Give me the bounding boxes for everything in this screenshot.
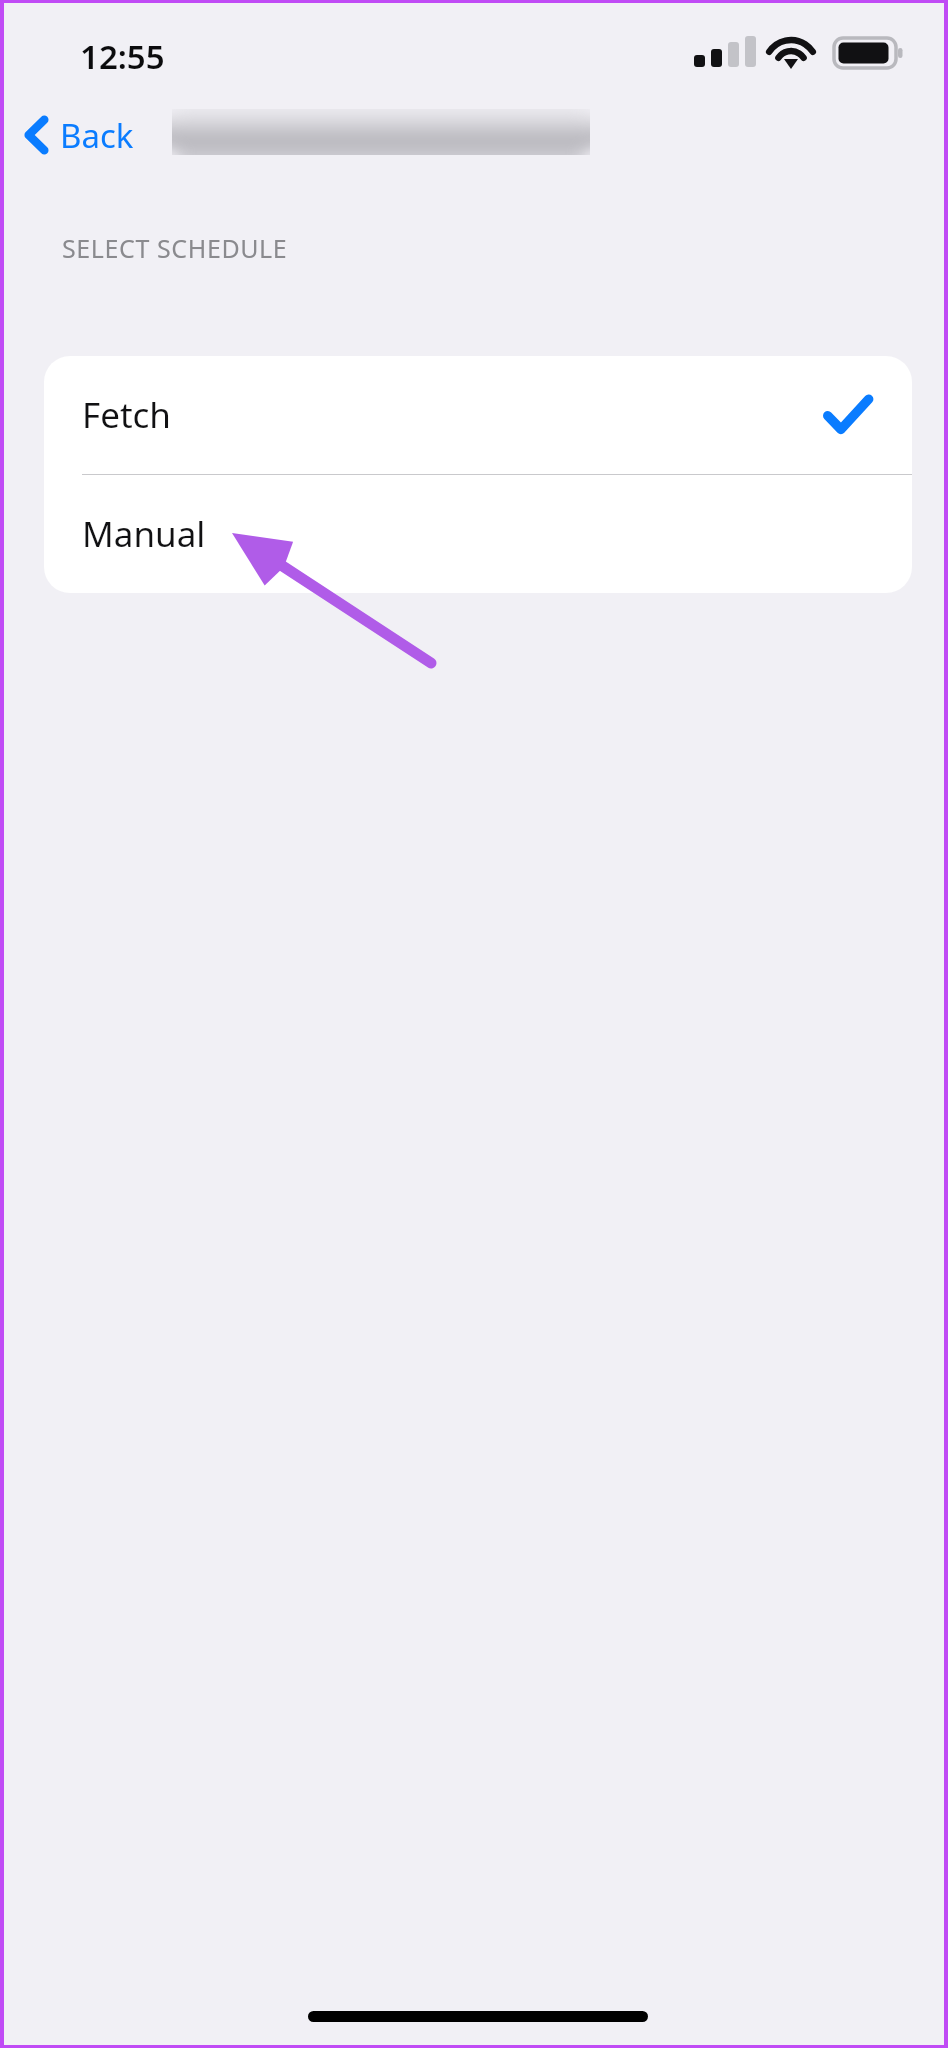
staticText: 12:55 xyxy=(80,34,165,79)
button[interactable]: Back xyxy=(18,103,140,167)
staticText: Back xyxy=(60,113,134,158)
button[interactable]: Fetch xyxy=(44,356,912,474)
staticText: SELECT SCHEDULE xyxy=(62,231,288,265)
button[interactable]: Manual xyxy=(44,475,912,593)
other: Selected xyxy=(826,397,870,433)
staticText: Manual xyxy=(82,510,870,558)
staticText: Fetch xyxy=(82,391,826,439)
